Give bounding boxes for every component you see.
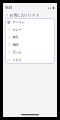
button[interactable]: カレー bbox=[5, 26, 55, 33]
button[interactable]: ラーメン bbox=[5, 18, 55, 26]
staticText: カレー bbox=[12, 28, 21, 32]
staticText: うどん bbox=[12, 58, 21, 62]
staticText: お気に入りリスト bbox=[10, 13, 40, 17]
staticText: 寿司 bbox=[12, 35, 18, 39]
button[interactable]: Back bbox=[3, 14, 10, 16]
staticText: ラーメン bbox=[12, 20, 24, 24]
button[interactable]: うどん bbox=[5, 56, 55, 63]
button[interactable]: 天ぷら bbox=[5, 48, 55, 56]
staticText: 天ぷら bbox=[12, 50, 21, 54]
staticText: 焼肉 bbox=[12, 43, 18, 47]
button[interactable]: 寿司 bbox=[5, 33, 55, 41]
button[interactable]: 焼肉 bbox=[5, 41, 55, 48]
staticText: 9:41 bbox=[5, 6, 11, 10]
staticText: ▪▪ ▮ bbox=[48, 6, 55, 9]
